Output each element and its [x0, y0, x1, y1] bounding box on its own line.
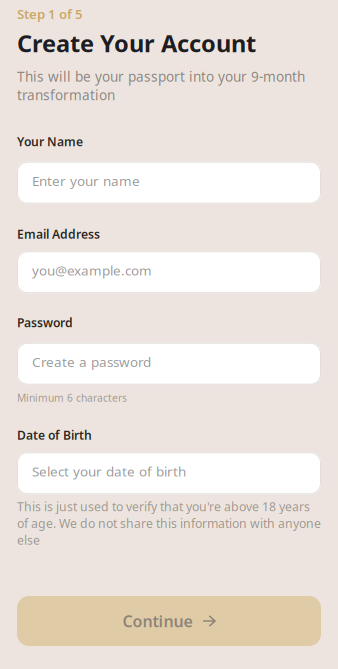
staticText: you@example.com: [32, 261, 152, 279]
staticText: Create a password: [32, 353, 151, 371]
staticText: Step 1 of 5: [17, 5, 83, 23]
button[interactable]: Continue: [17, 596, 321, 646]
staticText: Continue: [122, 610, 192, 632]
staticText: Your Name: [17, 133, 83, 150]
button[interactable]: you@example.com: [17, 251, 321, 293]
staticText: Create Your Account: [17, 27, 256, 59]
button[interactable]: Create a password: [17, 343, 321, 385]
staticText: Date of Birth: [17, 427, 92, 443]
staticText: Minimum 6 characters: [17, 391, 127, 405]
button[interactable]: Enter your name: [17, 162, 321, 204]
staticText: Select your date of birth: [32, 462, 186, 480]
button[interactable]: Select your date of birth: [17, 452, 321, 494]
staticText: Email Address: [17, 226, 100, 242]
staticText: Password: [17, 314, 73, 331]
staticText: This will be your passport into your 9-m…: [17, 67, 305, 104]
staticText: This is just used to verify that you're …: [17, 498, 321, 548]
staticText: Enter your name: [32, 171, 140, 190]
